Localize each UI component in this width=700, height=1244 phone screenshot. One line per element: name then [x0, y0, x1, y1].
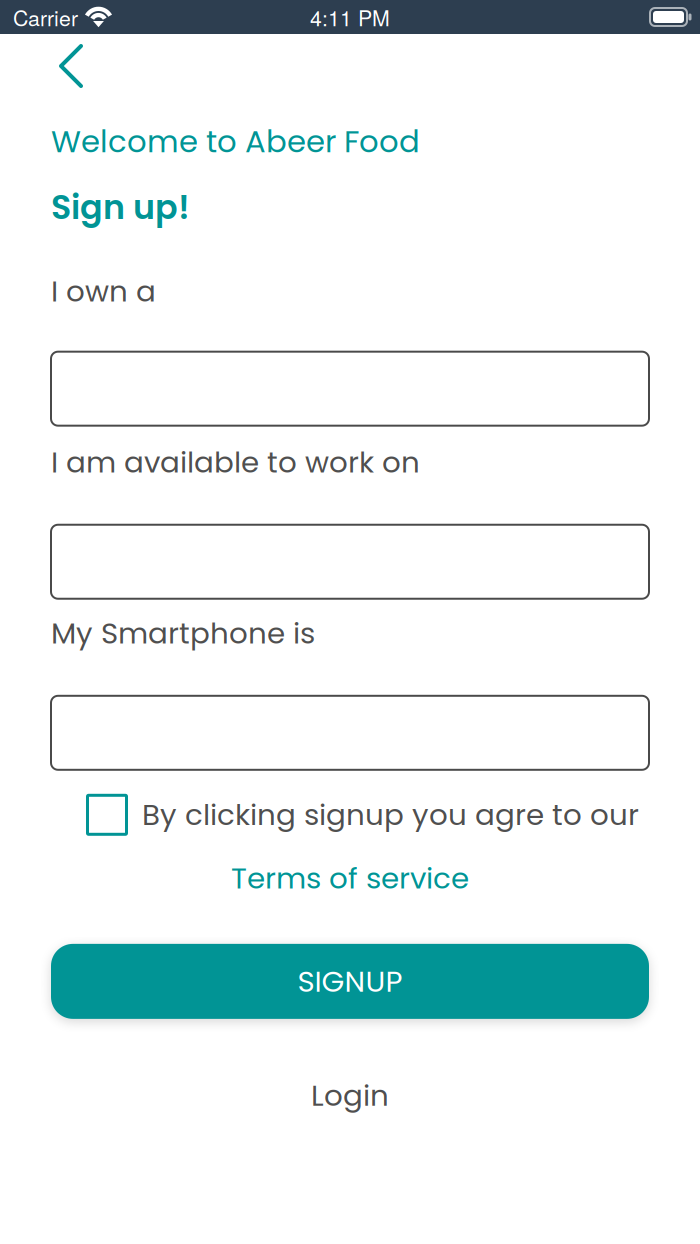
- staticText: Welcome to Abeer Food: [51, 120, 420, 163]
- staticText: I am available to work on: [51, 442, 420, 483]
- button[interactable]: Accept terms of service: [86, 794, 128, 836]
- button[interactable]: Terms of service: [0, 858, 700, 899]
- staticText: By clicking signup you agre to our: [142, 794, 639, 835]
- staticText: My Smartphone is: [51, 613, 315, 654]
- staticText: I own a: [51, 271, 156, 312]
- button[interactable]: Login: [0, 1075, 700, 1116]
- button[interactable]: Text field: [51, 525, 649, 599]
- button[interactable]: Text field: [51, 352, 649, 426]
- staticText: Login: [311, 1075, 389, 1116]
- button[interactable]: Back: [0, 34, 107, 102]
- staticText: Carrier: [13, 2, 78, 32]
- button[interactable]: Text field: [51, 696, 649, 770]
- staticText: 4:11 PM: [310, 2, 390, 32]
- button[interactable]: SIGNUP: [51, 944, 649, 1019]
- staticText: SIGNUP: [297, 961, 402, 1002]
- staticText: Terms of service: [231, 858, 469, 899]
- staticText: Sign up!: [51, 184, 190, 231]
